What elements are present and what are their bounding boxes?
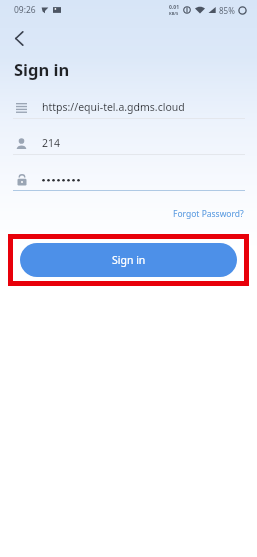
button[interactable] [0, 168, 257, 190]
staticText: Forgot Password? [173, 208, 244, 220]
button[interactable]: Back [2, 21, 36, 55]
staticText: 85% [219, 5, 235, 16]
button[interactable]: 214 [0, 132, 257, 154]
staticText: KB/S [169, 11, 179, 16]
staticText: Sign in [112, 253, 146, 267]
staticText: 214 [42, 136, 61, 150]
staticText: 0.01 [169, 4, 179, 11]
staticText: https://equi-tel.a.gdms.cloud [42, 100, 185, 114]
button[interactable]: Sign in [20, 243, 237, 277]
button[interactable]: https://equi-tel.a.gdms.cloud [0, 96, 257, 118]
staticText: 09:26 [14, 4, 36, 16]
staticText: Sign in [14, 58, 70, 80]
button[interactable]: Forgot Password? [171, 206, 246, 222]
